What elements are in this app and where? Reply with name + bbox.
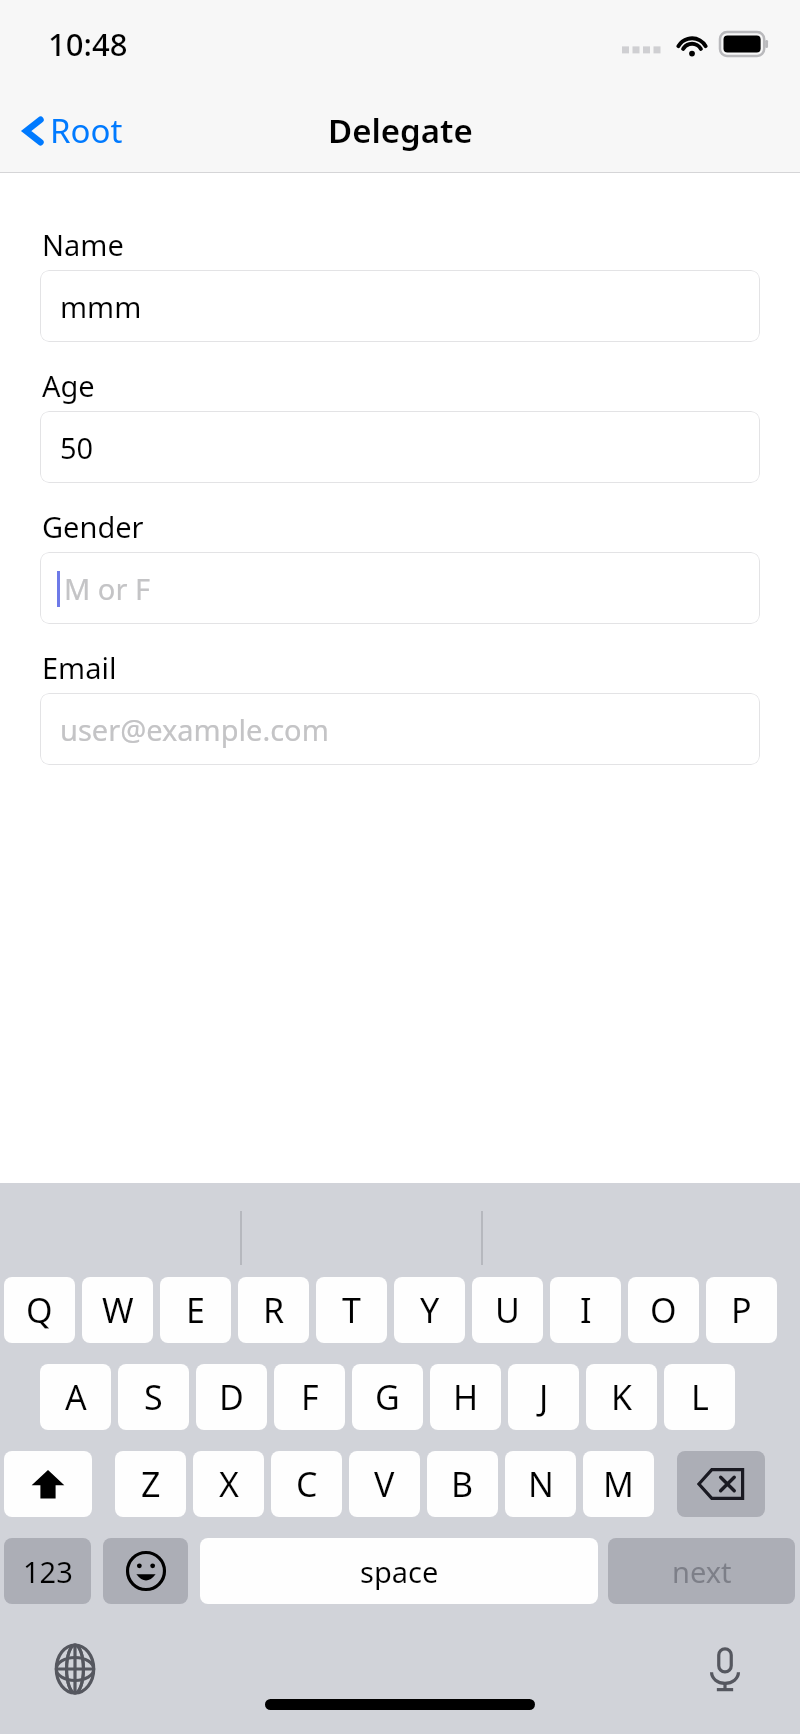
staticText: Root <box>50 108 123 153</box>
button[interactable]: S <box>118 1364 189 1430</box>
staticText: 10:48 <box>48 23 128 65</box>
button[interactable]: user@example.com <box>40 693 760 765</box>
button[interactable]: N <box>505 1451 576 1517</box>
staticText: A <box>65 1374 87 1420</box>
staticText: Delegate <box>328 108 473 153</box>
staticText: C <box>296 1461 318 1507</box>
staticText: X <box>219 1461 239 1507</box>
button[interactable]: A <box>40 1364 111 1430</box>
button[interactable]: Dictation <box>694 1638 756 1700</box>
button[interactable]: Emoji <box>103 1538 188 1604</box>
staticText: user@example.com <box>60 710 329 749</box>
staticText: H <box>453 1374 479 1420</box>
staticText: 123 <box>23 1552 73 1591</box>
button[interactable]: G <box>352 1364 423 1430</box>
button[interactable]: C <box>271 1451 342 1517</box>
button[interactable]: U <box>472 1277 543 1343</box>
staticText: J <box>539 1374 549 1420</box>
staticText: S <box>144 1374 163 1420</box>
button[interactable]: 123 <box>4 1538 91 1604</box>
button[interactable]: I <box>550 1277 621 1343</box>
button[interactable]: Change keyboard <box>44 1638 106 1700</box>
button[interactable]: K <box>586 1364 657 1430</box>
button[interactable]: Q <box>4 1277 75 1343</box>
button[interactable]: W <box>82 1277 153 1343</box>
staticText: E <box>186 1287 205 1333</box>
button[interactable]: Shift <box>4 1451 92 1517</box>
button[interactable]: O <box>628 1277 699 1343</box>
staticText: F <box>301 1374 319 1420</box>
button[interactable]: mmm <box>40 270 760 342</box>
button[interactable]: space <box>200 1538 598 1604</box>
button[interactable]: J <box>508 1364 579 1430</box>
staticText: W <box>102 1287 134 1333</box>
staticText: Z <box>141 1461 161 1507</box>
staticText: 50 <box>60 428 94 467</box>
button[interactable]: V <box>349 1451 420 1517</box>
button[interactable]: B <box>427 1451 498 1517</box>
staticText: R <box>263 1287 285 1333</box>
staticText: D <box>219 1374 244 1420</box>
button[interactable]: P <box>706 1277 777 1343</box>
staticText: Name <box>42 225 124 264</box>
button[interactable]: Backspace <box>677 1451 765 1517</box>
staticText: M <box>603 1461 634 1507</box>
button[interactable]: Root <box>16 108 123 153</box>
staticText: O <box>650 1287 677 1333</box>
staticText: mmm <box>60 287 142 326</box>
button[interactable]: E <box>160 1277 231 1343</box>
button[interactable]: 50 <box>40 411 760 483</box>
staticText: Y <box>420 1287 440 1333</box>
button[interactable]: X <box>193 1451 264 1517</box>
staticText: B <box>451 1461 474 1507</box>
staticText: P <box>731 1287 752 1333</box>
staticText: T <box>342 1287 361 1333</box>
staticText: N <box>528 1461 554 1507</box>
button[interactable]: Y <box>394 1277 465 1343</box>
button[interactable]: D <box>196 1364 267 1430</box>
button[interactable]: R <box>238 1277 309 1343</box>
button[interactable]: L <box>664 1364 735 1430</box>
staticText: G <box>375 1374 400 1420</box>
staticText: K <box>611 1374 633 1420</box>
button[interactable]: F <box>274 1364 345 1430</box>
button[interactable]: M <box>583 1451 654 1517</box>
staticText: Gender <box>42 507 144 546</box>
staticText: U <box>495 1287 520 1333</box>
staticText: next <box>672 1552 732 1591</box>
staticText: L <box>691 1374 709 1420</box>
staticText: Email <box>42 648 117 687</box>
button[interactable]: Z <box>115 1451 186 1517</box>
staticText: V <box>374 1461 395 1507</box>
staticText: Age <box>42 366 95 405</box>
staticText: I <box>580 1287 592 1333</box>
button[interactable]: H <box>430 1364 501 1430</box>
button[interactable]: next <box>608 1538 795 1604</box>
button[interactable]: T <box>316 1277 387 1343</box>
staticText: M or F <box>64 569 150 608</box>
button[interactable]: M or F <box>40 552 760 624</box>
staticText: Q <box>26 1287 53 1333</box>
staticText: space <box>360 1552 439 1591</box>
